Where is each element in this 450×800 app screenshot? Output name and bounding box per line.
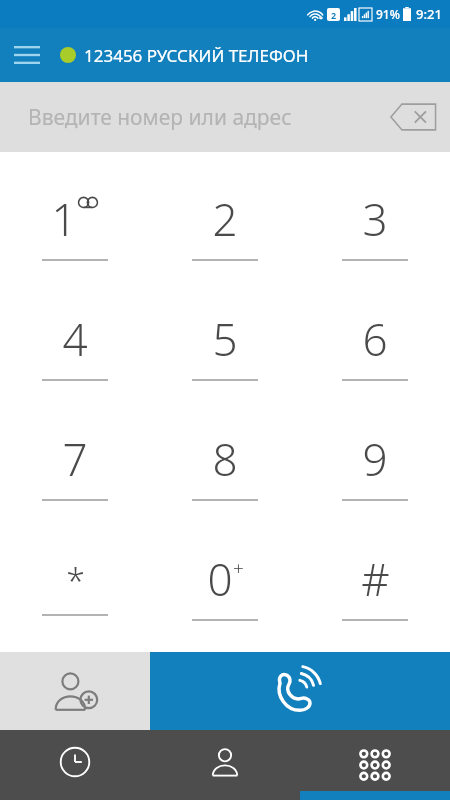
- staticText: 2: [331, 9, 337, 21]
- button[interactable]: 3: [300, 158, 450, 278]
- staticText: 1: [51, 189, 77, 249]
- staticText: 3: [362, 189, 388, 249]
- button[interactable]: *: [0, 518, 150, 638]
- button[interactable]: Add contact: [0, 652, 150, 730]
- button[interactable]: Backspace: [384, 88, 442, 146]
- button[interactable]: 7: [0, 398, 150, 518]
- staticText: +: [233, 555, 244, 581]
- staticText: 9:21: [416, 5, 442, 23]
- button[interactable]: Keypad: [300, 730, 450, 800]
- button[interactable]: #: [300, 518, 450, 638]
- button[interactable]: Contacts: [150, 730, 300, 800]
- button[interactable]: 5: [150, 278, 300, 398]
- staticText: 2: [212, 189, 238, 249]
- staticText: #: [361, 549, 390, 609]
- staticText: 9: [362, 429, 388, 489]
- staticText: Введите номер или адрес: [28, 103, 292, 132]
- staticText: 91%: [376, 6, 400, 22]
- button[interactable]: Recents: [0, 730, 150, 800]
- button[interactable]: 2: [150, 158, 300, 278]
- staticText: 6: [362, 309, 388, 369]
- button[interactable]: Call: [150, 652, 450, 730]
- button[interactable]: 6: [300, 278, 450, 398]
- button[interactable]: 4: [0, 278, 150, 398]
- staticText: 4: [62, 309, 88, 369]
- staticText: *: [66, 558, 85, 604]
- button[interactable]: 0: [150, 518, 300, 638]
- staticText: 123456 РУССКИЙ ТЕЛЕФОН: [84, 44, 309, 67]
- button[interactable]: 9: [300, 398, 450, 518]
- button[interactable]: 1: [0, 158, 150, 278]
- staticText: 5: [212, 309, 238, 369]
- staticText: 8: [212, 429, 238, 489]
- button[interactable]: Menu: [0, 28, 54, 82]
- staticText: 7: [62, 429, 88, 489]
- staticText: 0: [207, 549, 233, 609]
- button[interactable]: 8: [150, 398, 300, 518]
